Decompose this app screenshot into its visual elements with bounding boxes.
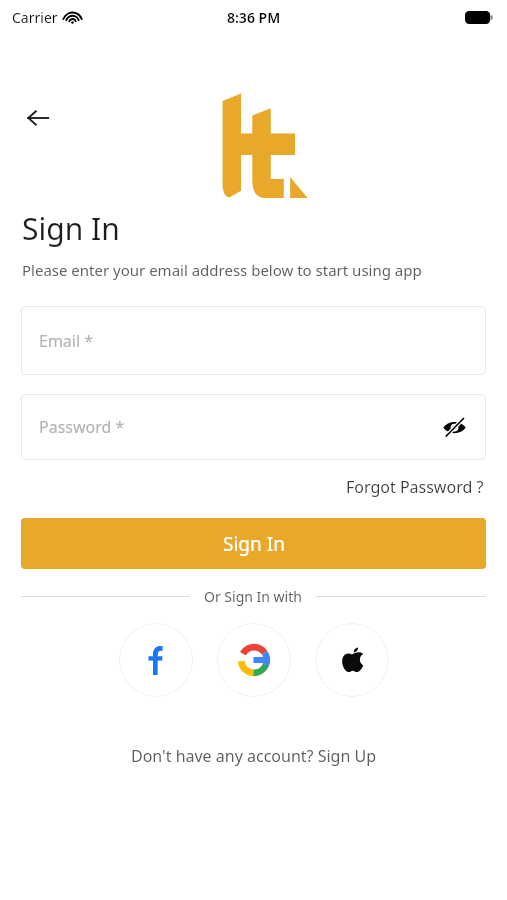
button[interactable]: Forgot Password ? [344,472,486,502]
button[interactable]: Email * [21,306,486,375]
staticText: Password * [39,416,125,438]
button[interactable]: Back [18,98,58,138]
staticText: Don't have any account? Sign Up [131,745,376,767]
staticText: Sign In [223,531,285,557]
button[interactable]: Sign in with Facebook [119,623,193,697]
staticText: Please enter your email address below to… [22,260,422,280]
staticText: Sign In [22,208,120,249]
staticText: Forgot Password ? [346,476,484,498]
staticText: 8:36 PM [227,8,281,27]
button[interactable]: Sign in with Apple [315,623,389,697]
button[interactable]: Don't have any account? Sign Up [119,739,388,773]
staticText: Email * [39,330,94,352]
staticText: Or Sign In with [204,587,302,606]
button[interactable]: Sign In [21,518,486,569]
button[interactable]: Sign in with Google [217,623,291,697]
button[interactable]: Show password [434,407,474,447]
staticText: Carrier [12,8,58,27]
button[interactable]: Password * [21,394,486,460]
